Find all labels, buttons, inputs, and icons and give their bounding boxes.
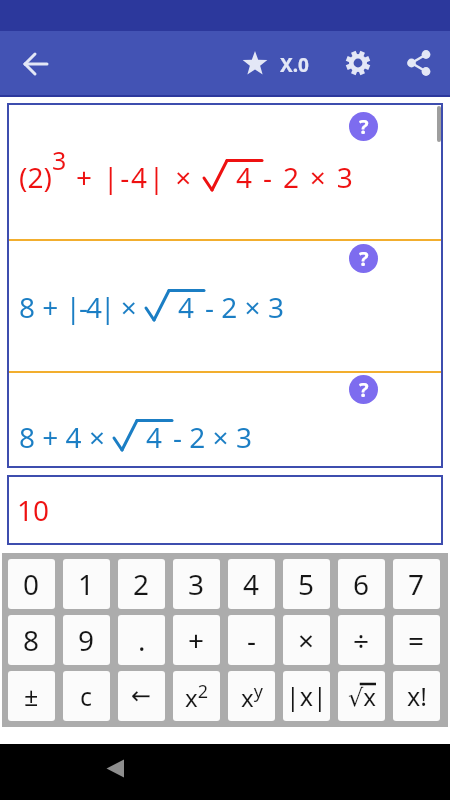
staticText: 8: [23, 621, 40, 659]
staticText: +: [188, 621, 205, 659]
staticText: - 2 × 3: [263, 158, 355, 196]
staticText: 4: [178, 288, 195, 326]
button[interactable]: -: [228, 615, 275, 665]
button[interactable]: .: [118, 615, 165, 665]
staticText: ←: [131, 682, 152, 710]
button[interactable]: 3: [173, 559, 220, 609]
staticText: (2): [19, 158, 52, 196]
button[interactable]: ←: [118, 671, 165, 721]
button[interactable]: [95, 748, 135, 788]
button[interactable]: =: [393, 615, 440, 665]
button[interactable]: ?: [9, 241, 441, 371]
button[interactable]: ?: [9, 105, 441, 239]
button[interactable]: 1: [63, 559, 110, 609]
button[interactable]: [399, 43, 439, 83]
button[interactable]: 8: [8, 615, 55, 665]
staticText: -: [247, 621, 257, 659]
staticText: c: [80, 679, 93, 713]
staticText: x2: [185, 679, 208, 714]
button[interactable]: ?: [349, 244, 378, 273]
staticText: ?: [359, 245, 369, 272]
staticText: ?: [359, 376, 369, 403]
staticText: 9: [78, 621, 95, 659]
button[interactable]: x!: [393, 671, 440, 721]
staticText: x!: [407, 679, 427, 713]
button[interactable]: 6: [338, 559, 385, 609]
button[interactable]: 5: [283, 559, 330, 609]
staticText: 1: [78, 565, 95, 603]
staticText: .: [138, 621, 146, 659]
staticText: 10: [17, 491, 50, 529]
staticText: ×: [298, 621, 315, 659]
staticText: 4: [146, 418, 163, 456]
button[interactable]: 10: [7, 475, 443, 545]
button[interactable]: ÷: [338, 615, 385, 665]
staticText: √x: [348, 680, 376, 713]
staticText: 3: [52, 143, 67, 177]
staticText: 4: [243, 565, 260, 603]
button[interactable]: 9: [63, 615, 110, 665]
button[interactable]: 4: [228, 559, 275, 609]
button[interactable]: 2: [118, 559, 165, 609]
button[interactable]: ±: [8, 671, 55, 721]
button[interactable]: +: [173, 615, 220, 665]
staticText: + |-4| ×: [67, 158, 203, 196]
staticText: =: [408, 621, 425, 659]
staticText: 4: [236, 158, 253, 196]
staticText: 2: [133, 565, 150, 603]
button[interactable]: c: [63, 671, 110, 721]
staticText: ?: [359, 113, 369, 140]
staticText: 5: [298, 565, 315, 603]
button[interactable]: [235, 43, 275, 83]
button[interactable]: ×: [283, 615, 330, 665]
staticText: - 2 × 3: [173, 418, 252, 456]
staticText: 6: [353, 565, 370, 603]
staticText: - 2 × 3: [205, 288, 284, 326]
button[interactable]: |x|: [283, 671, 330, 721]
button[interactable]: ?: [9, 373, 441, 466]
staticText: |x|: [286, 679, 327, 713]
button[interactable]: [338, 43, 378, 83]
button[interactable]: ?: [349, 112, 378, 141]
button[interactable]: √x: [338, 671, 385, 721]
staticText: 3: [188, 565, 205, 603]
staticText: 0: [23, 565, 40, 603]
button[interactable]: 0: [8, 559, 55, 609]
staticText: ±: [24, 679, 39, 713]
staticText: 8 + |-4| ×: [19, 288, 145, 326]
staticText: X.0: [280, 52, 309, 78]
staticText: ÷: [353, 621, 370, 659]
button[interactable]: xy: [228, 671, 275, 721]
button[interactable]: X.0: [280, 52, 309, 78]
staticText: xy: [241, 679, 263, 714]
button[interactable]: 7: [393, 559, 440, 609]
button[interactable]: x2: [173, 671, 220, 721]
staticText: 8 + 4 ×: [19, 418, 113, 456]
button[interactable]: [12, 40, 60, 88]
button[interactable]: ?: [349, 375, 378, 404]
staticText: 7: [408, 565, 425, 603]
